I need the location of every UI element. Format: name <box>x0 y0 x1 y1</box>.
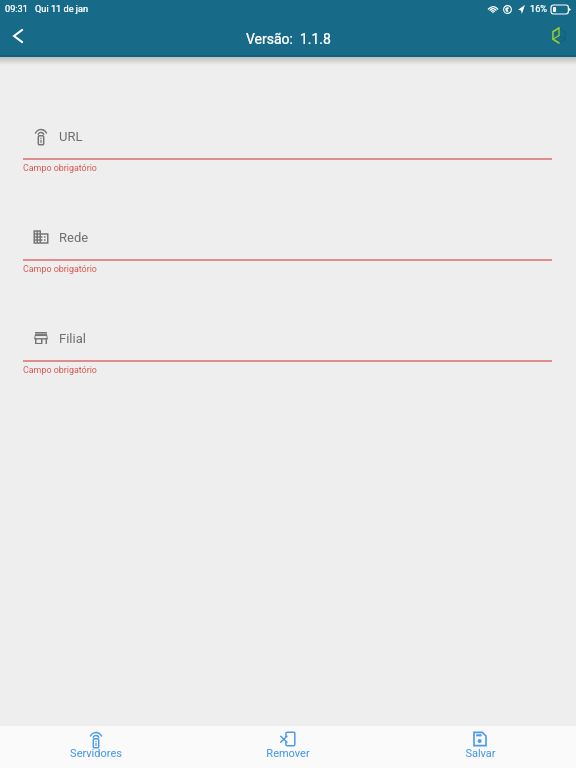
button[interactable]: Logo do aplicativo <box>544 20 574 50</box>
staticText: Rede <box>59 230 89 245</box>
staticText: Remover <box>266 747 310 760</box>
staticText: 16% <box>530 3 548 14</box>
staticText: Versão: 1.1.8 <box>246 31 331 47</box>
staticText: Servidores <box>70 747 122 760</box>
button[interactable]: Remover <box>192 726 384 761</box>
staticText: URL <box>59 129 83 144</box>
button[interactable]: Servidores <box>0 726 192 761</box>
button[interactable]: Salvar <box>384 726 576 761</box>
staticText: Salvar <box>465 747 496 760</box>
staticText: Campo obrigatório <box>23 264 97 274</box>
button[interactable]: Voltar <box>1 19 34 52</box>
staticText: Filial <box>59 331 86 346</box>
staticText: Qui 11 de jan <box>35 3 89 14</box>
staticText: 09:31 <box>5 3 28 14</box>
staticText: Campo obrigatório <box>23 163 97 173</box>
staticText: Campo obrigatório <box>23 365 97 375</box>
